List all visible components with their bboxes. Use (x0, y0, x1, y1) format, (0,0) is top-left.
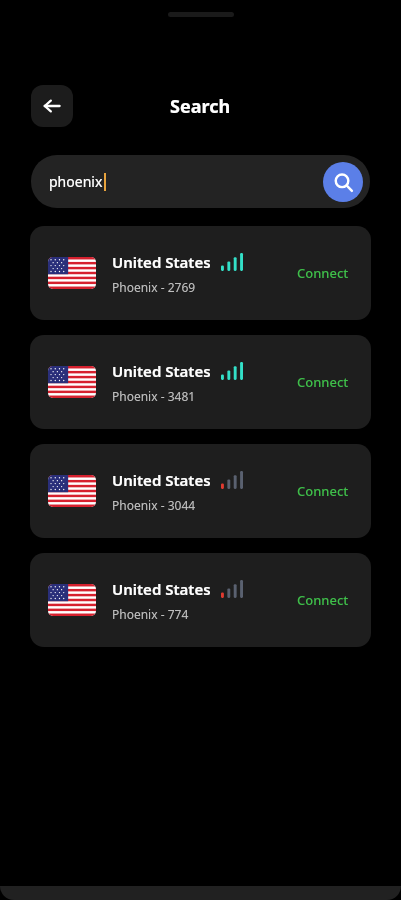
staticText: Connect (297, 591, 349, 609)
button[interactable]: Connect (289, 367, 357, 397)
staticText: Phoenix - 774 (112, 606, 189, 622)
button[interactable]: United States (30, 553, 371, 647)
button[interactable]: Connect (289, 585, 357, 615)
button[interactable]: Connect (289, 476, 357, 506)
button[interactable]: Connect (289, 258, 357, 288)
staticText: Connect (297, 373, 349, 391)
staticText: Phoenix - 2769 (112, 279, 196, 295)
staticText: Connect (297, 264, 349, 282)
staticText: phoenix (49, 172, 103, 191)
staticText: United States (112, 579, 211, 599)
button[interactable]: Back (31, 85, 73, 127)
button[interactable]: United States (30, 335, 371, 429)
button[interactable]: Search (323, 162, 363, 202)
staticText: Connect (297, 482, 349, 500)
staticText: Phoenix - 3044 (112, 497, 196, 513)
staticText: Search (170, 94, 231, 119)
staticText: United States (112, 470, 211, 490)
staticText: Phoenix - 3481 (112, 388, 196, 404)
button[interactable]: United States (30, 444, 371, 538)
button[interactable]: United States (30, 226, 371, 320)
staticText: United States (112, 361, 211, 381)
button[interactable]: phoenix (31, 155, 370, 208)
staticText: United States (112, 252, 211, 272)
